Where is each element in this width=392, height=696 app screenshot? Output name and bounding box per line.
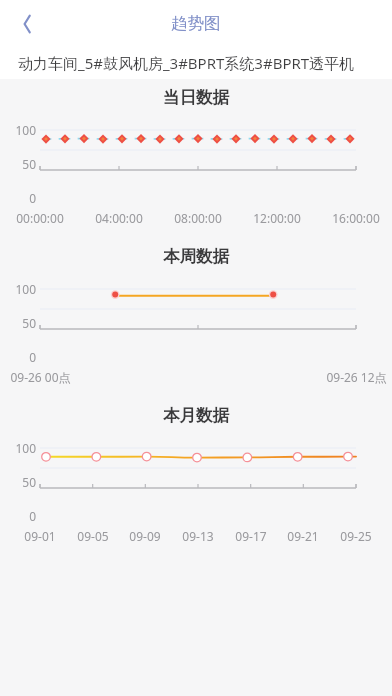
staticText: 09-17 <box>235 528 267 544</box>
staticText: 50 <box>22 156 36 170</box>
button[interactable]: Back <box>8 4 48 44</box>
staticText: 09-21 <box>287 528 319 544</box>
staticText: 本月数据 <box>0 405 392 426</box>
staticText: 100 <box>15 281 36 295</box>
staticText: 09-13 <box>182 528 214 544</box>
staticText: 趋势图 <box>171 13 221 34</box>
staticText: 100 <box>15 122 36 136</box>
staticText: 50 <box>22 315 36 329</box>
staticText: 09-26 12点 <box>326 369 387 385</box>
staticText: 当日数据 <box>0 87 392 108</box>
staticText: 09-26 00点 <box>10 369 71 385</box>
staticText: 00:00:00 <box>16 210 64 226</box>
staticText: 08:00:00 <box>174 210 222 226</box>
staticText: 0 <box>29 349 36 363</box>
staticText: 动力车间_5#鼓风机房_3#BPRT系统3#BPRT透平机 <box>18 53 355 73</box>
staticText: 12:00:00 <box>253 210 301 226</box>
staticText: 16:00:00 <box>332 210 380 226</box>
staticText: 04:00:00 <box>95 210 143 226</box>
staticText: 09-05 <box>77 528 109 544</box>
staticText: 09-01 <box>24 528 56 544</box>
staticText: 本周数据 <box>0 246 392 267</box>
staticText: 0 <box>29 190 36 204</box>
staticText: 0 <box>29 508 36 522</box>
staticText: 09-25 <box>340 528 372 544</box>
staticText: 09-09 <box>129 528 161 544</box>
staticText: 100 <box>15 440 36 454</box>
staticText: 50 <box>22 474 36 488</box>
